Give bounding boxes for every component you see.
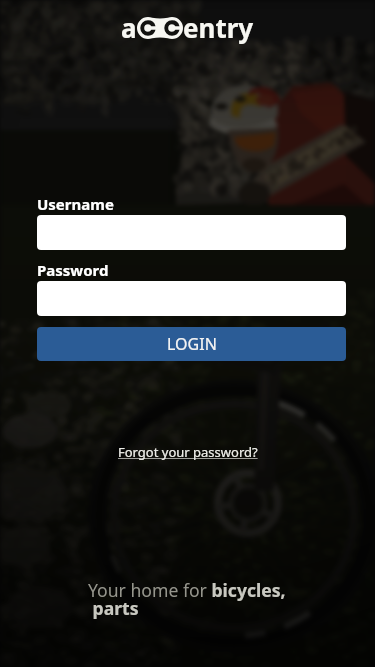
staticText: Username xyxy=(37,194,114,214)
button[interactable]: Forgot your password? xyxy=(118,443,258,461)
button[interactable] xyxy=(37,215,346,250)
button[interactable] xyxy=(37,281,346,316)
staticText: Forgot your password? xyxy=(118,443,258,461)
staticText: Your home for bicycles, parts xyxy=(88,578,286,621)
staticText: a xyxy=(121,10,137,45)
staticText: Password xyxy=(37,260,109,280)
staticText: entry xyxy=(183,10,254,45)
staticText: LOGIN xyxy=(167,333,217,355)
button[interactable]: LOGIN xyxy=(37,327,346,361)
